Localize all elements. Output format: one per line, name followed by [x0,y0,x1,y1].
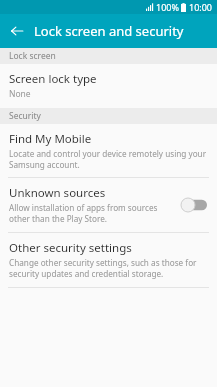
staticText: 100% [156,1,179,13]
staticText: Security [9,110,41,122]
staticText: 10:00 [189,1,213,13]
staticText: Lock screen and security [34,22,184,40]
button[interactable]: Screen lock type [0,64,217,108]
staticText: Unknown sources [9,185,106,201]
staticText: Allow installation of apps from sources … [9,202,175,224]
staticText: Locate and control your device remotely … [9,148,209,170]
staticText: Screen lock type [9,71,97,87]
button[interactable]: Unknown sources toggle [179,195,209,215]
staticText: Lock screen [9,50,56,62]
button[interactable]: Other security settings [0,233,217,287]
staticText: None [9,88,31,100]
staticText: Change other security settings, such as … [9,257,209,279]
button[interactable]: Unknown sources [0,178,217,232]
button[interactable]: Find My Mobile [0,124,217,177]
staticText: Find My Mobile [9,131,92,147]
staticText: Other security settings [9,240,132,256]
button[interactable]: Navigate up [0,14,34,48]
